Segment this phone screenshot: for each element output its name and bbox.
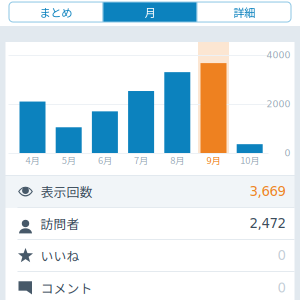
staticText: 月 — [144, 4, 155, 20]
staticText: 8月 — [170, 153, 184, 167]
staticText: 2000 — [266, 99, 290, 109]
staticText: 9月 — [206, 153, 220, 167]
staticText: 5月 — [62, 153, 76, 167]
staticText: 7月 — [134, 153, 148, 167]
button[interactable]: 表示回数 — [5, 176, 294, 208]
staticText: コメント — [40, 279, 92, 297]
staticText: 表示回数 — [40, 182, 92, 201]
staticText: 3,669 — [249, 184, 285, 199]
staticText: 10月 — [240, 153, 259, 167]
staticText: 0 — [277, 280, 285, 296]
button[interactable]: 訪問者 — [5, 208, 294, 240]
button[interactable]: コメント — [5, 272, 294, 300]
staticText: 0 — [284, 148, 290, 158]
button[interactable]: 詳細 — [198, 2, 291, 22]
staticText: 訪問者 — [40, 214, 79, 233]
button[interactable]: いいね — [5, 240, 294, 272]
staticText: 4000 — [266, 50, 290, 60]
staticText: 6月 — [98, 153, 112, 167]
staticText: いいね — [40, 246, 79, 265]
staticText: 4月 — [25, 153, 39, 167]
button[interactable]: まとめ — [9, 2, 102, 22]
staticText: 2,472 — [249, 216, 285, 231]
staticText: まとめ — [39, 4, 72, 20]
button[interactable]: 月 — [103, 2, 197, 22]
staticText: 0 — [277, 248, 285, 263]
staticText: 詳細 — [233, 4, 255, 20]
